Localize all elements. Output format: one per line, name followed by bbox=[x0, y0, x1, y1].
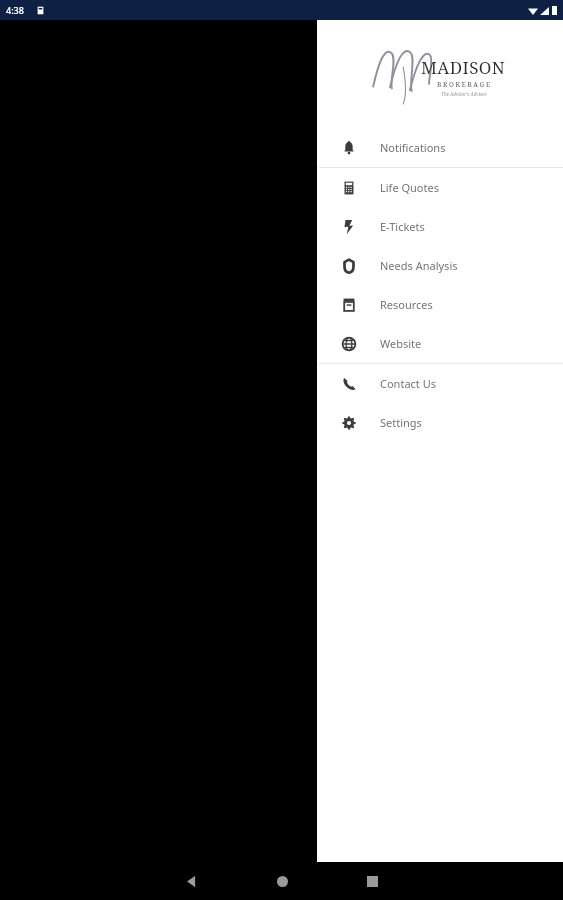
button[interactable]: Resources bbox=[317, 285, 563, 324]
staticText: Website bbox=[380, 336, 422, 351]
staticText: Contact Us bbox=[380, 376, 436, 391]
staticText: Settings bbox=[380, 415, 422, 430]
button[interactable]: Life Quotes bbox=[317, 168, 563, 207]
staticText: E-Tickets bbox=[380, 219, 425, 234]
staticText: 4:38 bbox=[6, 4, 24, 16]
staticText: B R O K E R A G E bbox=[437, 80, 490, 89]
button[interactable]: Recent apps bbox=[354, 863, 390, 899]
button[interactable]: Settings bbox=[317, 403, 563, 442]
staticText: Resources bbox=[380, 297, 433, 312]
button[interactable]: E-Tickets bbox=[317, 207, 563, 246]
button[interactable]: Needs Analysis bbox=[317, 246, 563, 285]
staticText: The Advisor's Advisor bbox=[441, 91, 487, 97]
button[interactable]: Website bbox=[317, 324, 563, 363]
staticText: Notifications bbox=[380, 140, 446, 155]
staticText: Needs Analysis bbox=[380, 258, 458, 273]
button[interactable]: Home bbox=[264, 863, 300, 899]
button[interactable]: Notifications bbox=[317, 128, 563, 167]
staticText: MADISON bbox=[421, 56, 506, 79]
button[interactable]: Contact Us bbox=[317, 364, 563, 403]
staticText: Life Quotes bbox=[380, 180, 439, 195]
button[interactable]: Back bbox=[173, 863, 209, 899]
